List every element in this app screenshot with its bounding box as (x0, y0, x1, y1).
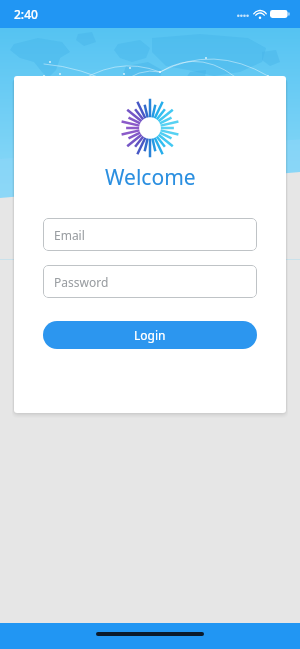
staticText: Password (54, 274, 109, 290)
button[interactable]: Email (43, 218, 257, 251)
button[interactable]: Login (43, 321, 257, 349)
button[interactable]: Password (43, 265, 257, 298)
staticText: Login (134, 327, 166, 343)
staticText: Email (54, 227, 85, 243)
staticText: 2:40 (14, 6, 38, 22)
other: Home indicator (96, 632, 204, 636)
staticText: Welcome (105, 163, 196, 192)
